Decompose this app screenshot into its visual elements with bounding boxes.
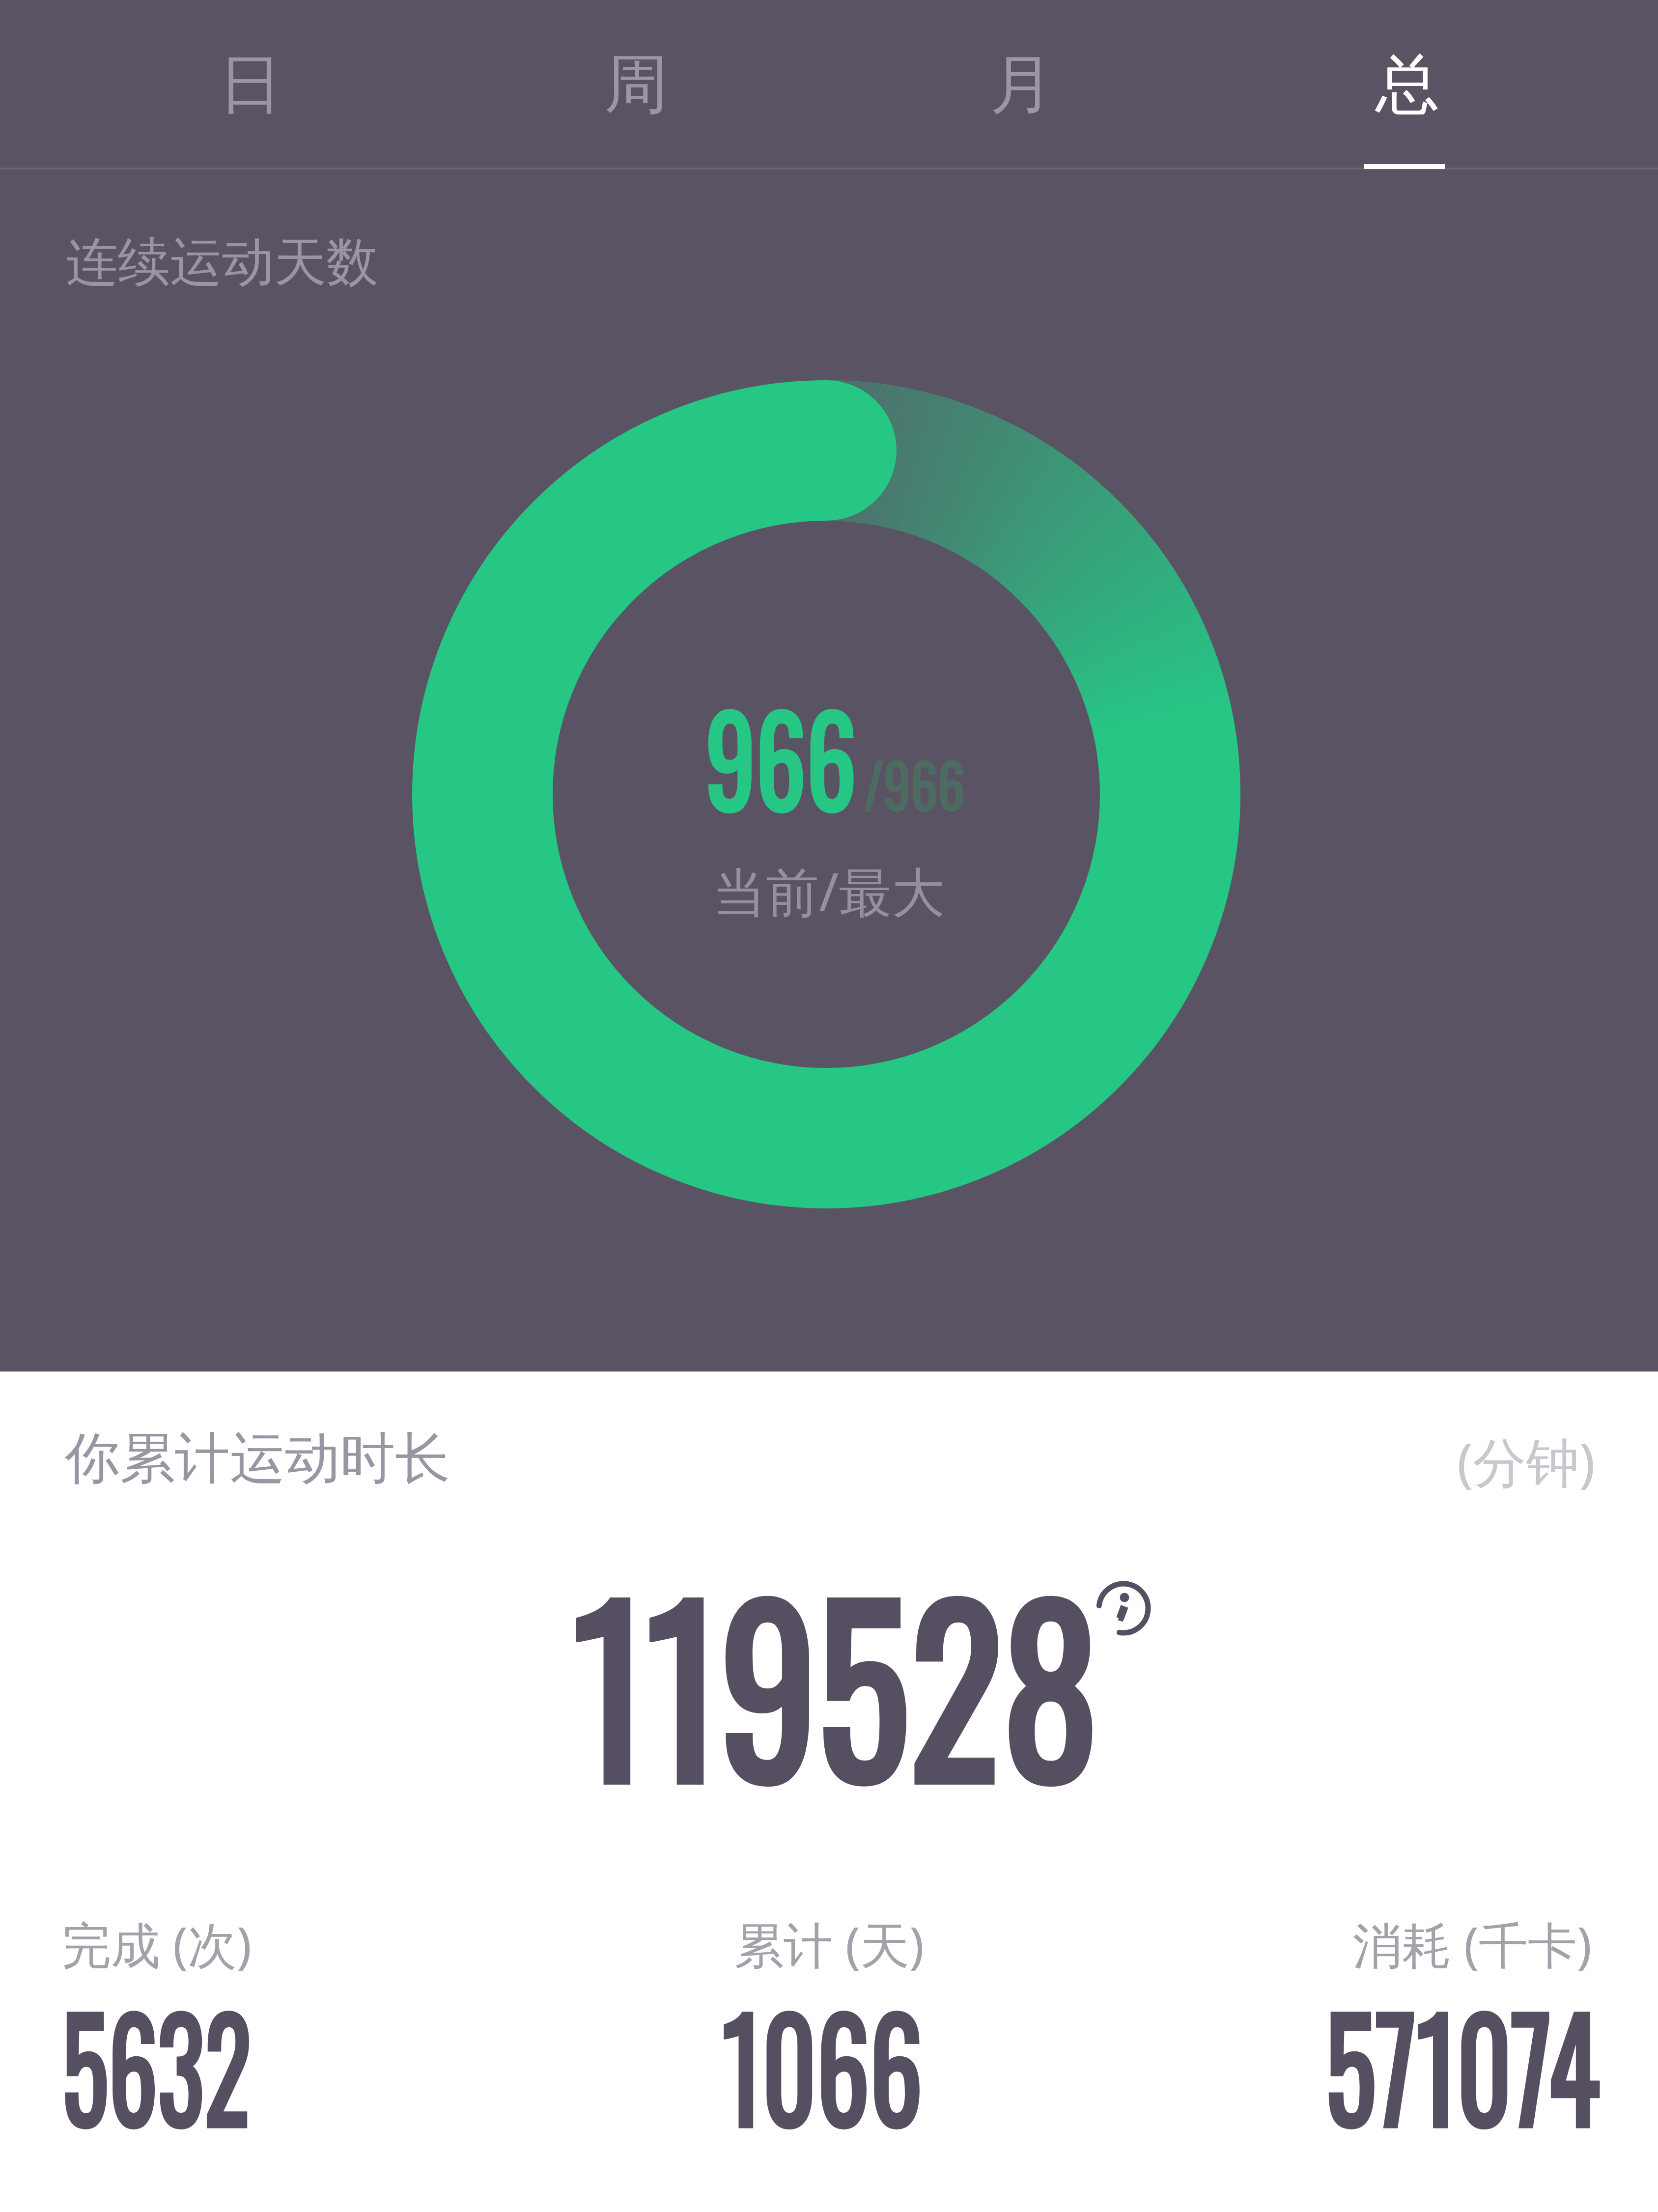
staticText: (分钟)	[1457, 1425, 1595, 1498]
button[interactable]: 月	[829, 0, 1214, 169]
staticText: 日	[219, 45, 282, 125]
button[interactable]: 周	[443, 0, 829, 169]
staticText: 571074	[1325, 1961, 1600, 2166]
button[interactable]: 日	[58, 0, 443, 169]
staticText: 连续运动天数	[66, 230, 378, 296]
staticText: /966	[864, 739, 965, 828]
staticText: 5632	[62, 1961, 251, 2166]
staticText: 你累计运动时长	[65, 1424, 450, 1493]
staticText: 119528	[573, 1516, 1099, 1846]
staticText: 总	[1376, 45, 1439, 125]
staticText: 累计 (天)	[734, 1910, 924, 1978]
staticText: 966	[705, 665, 856, 846]
button[interactable]	[1096, 1581, 1152, 1637]
staticText: 1066	[722, 1961, 923, 2166]
staticText: 当前/最大	[713, 855, 945, 927]
staticText: 完成 (次)	[62, 1910, 252, 1978]
staticText: 周	[604, 45, 668, 125]
staticText: 消耗 (千卡)	[1353, 1910, 1592, 1978]
staticText: 月	[990, 45, 1054, 125]
button[interactable]: 总	[1214, 0, 1600, 169]
